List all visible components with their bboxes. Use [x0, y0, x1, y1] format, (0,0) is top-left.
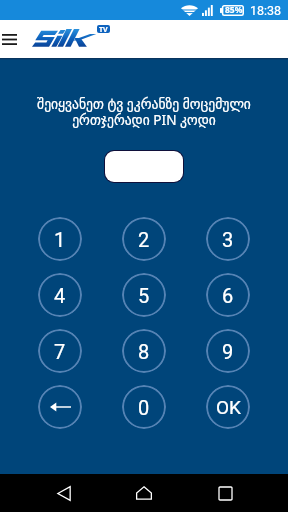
button[interactable]: Menu — [0, 20, 19, 58]
staticText: 9 — [222, 340, 234, 363]
button[interactable]: 2 — [122, 217, 166, 261]
button[interactable]: 8 — [122, 329, 166, 373]
staticText: 8 — [138, 340, 150, 363]
staticText: 6 — [222, 284, 234, 307]
button[interactable]: Back — [47, 476, 81, 510]
staticText: 0 — [138, 396, 150, 419]
staticText: 1 — [54, 228, 66, 251]
button[interactable]: 1 — [38, 217, 82, 261]
button[interactable]: Backspace — [38, 385, 82, 429]
button[interactable]: OK — [206, 385, 250, 429]
staticText: 4 — [54, 284, 66, 307]
staticText: 5 — [138, 284, 150, 307]
button[interactable]: Home — [127, 476, 161, 510]
button[interactable]: 5 — [122, 273, 166, 317]
staticText: შეიყვანეთ ტვ ეკრანზე მოცემული ერთჯერადი … — [12, 94, 276, 129]
button[interactable]: 6 — [206, 273, 250, 317]
button[interactable]: 7 — [38, 329, 82, 373]
staticText: 2 — [138, 228, 150, 251]
staticText: TV — [99, 25, 108, 33]
staticText: 3 — [222, 228, 234, 251]
staticText: 18:38 — [250, 3, 282, 18]
button[interactable] — [105, 151, 183, 182]
staticText: 85% — [225, 4, 243, 16]
button[interactable]: Recents — [208, 476, 242, 510]
button[interactable]: 0 — [122, 385, 166, 429]
staticText: OK — [216, 396, 241, 418]
button[interactable]: 9 — [206, 329, 250, 373]
button[interactable]: 4 — [38, 273, 82, 317]
staticText: 7 — [54, 340, 66, 363]
button[interactable]: 3 — [206, 217, 250, 261]
